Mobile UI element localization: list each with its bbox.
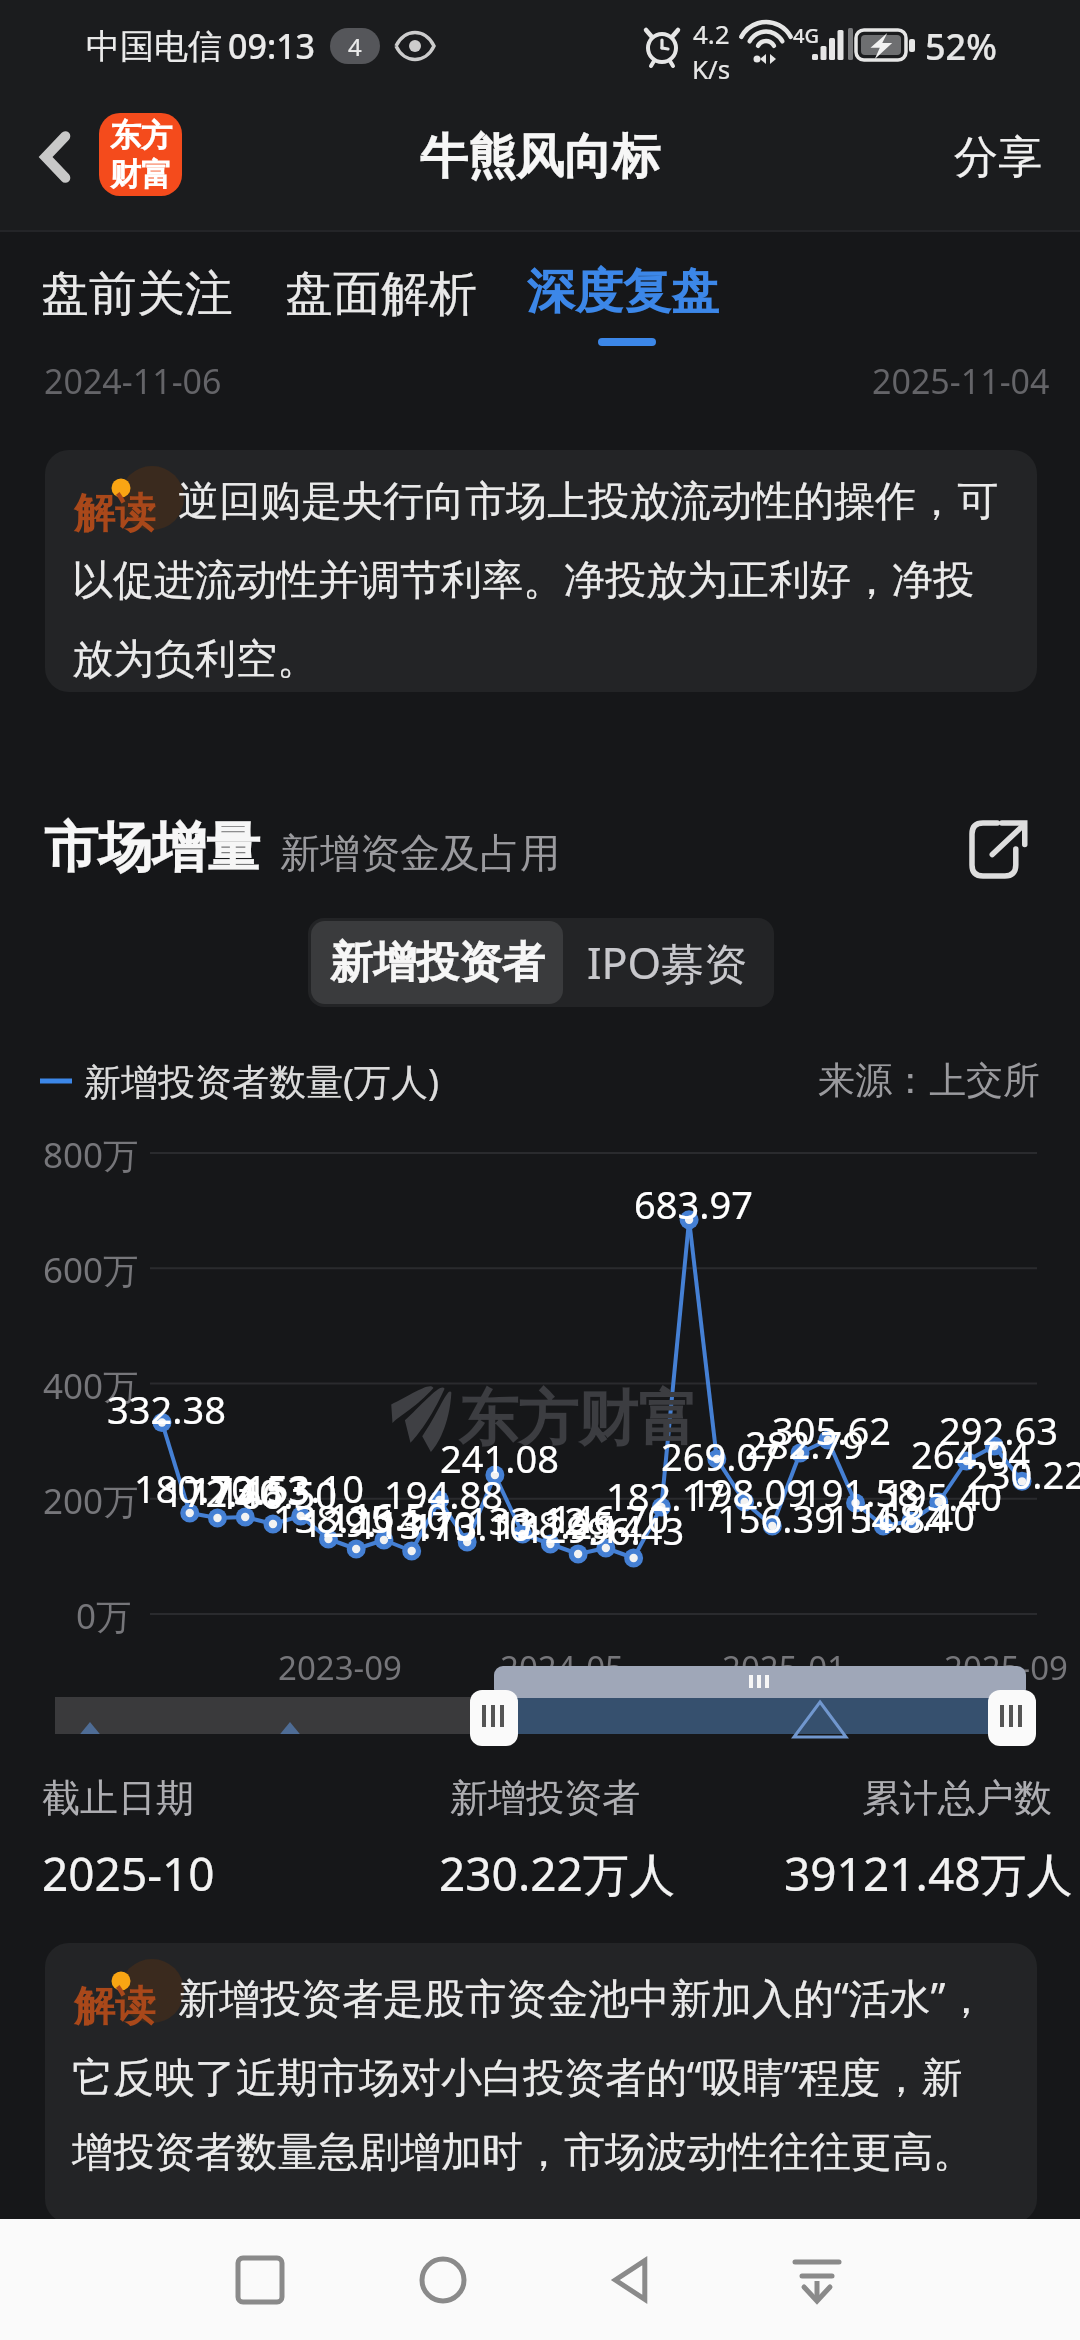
staticText: 683.97 (634, 1178, 753, 1230)
staticText: 新增投资者 (450, 1774, 640, 1822)
staticText: 分享 (954, 130, 1042, 185)
staticText: 129.14 (523, 1502, 642, 1554)
staticText: 东方财富 (458, 1381, 698, 1457)
button[interactable]: 分享 (954, 130, 1042, 185)
staticText: 195.40 (883, 1470, 1002, 1522)
staticText: 累计总户数 (862, 1774, 1052, 1822)
staticText: 解读 (74, 1981, 156, 2033)
staticText: 173.53 (190, 1464, 309, 1516)
staticText: 解读 (74, 488, 156, 540)
button[interactable]: Home (398, 2235, 488, 2325)
staticText: 156.39 (717, 1492, 836, 1544)
staticText: 292.63 (939, 1404, 1058, 1456)
staticText: 增投资者数量急剧增加时，市场波动性往往更高。 (72, 2127, 974, 2179)
staticText: 191.58 (800, 1466, 919, 1518)
staticText: 600万 (43, 1246, 139, 1294)
staticText: 中国电信 (86, 25, 222, 68)
staticText: 市场增量 (44, 814, 260, 882)
staticText: 305.62 (772, 1404, 891, 1456)
staticText: 0万 (76, 1592, 132, 1640)
staticText: 深度复盘 (527, 262, 719, 322)
staticText: 2025-09 (944, 1645, 1068, 1690)
staticText: 182.17 (606, 1470, 725, 1522)
staticText: 财富 (110, 155, 172, 194)
staticText: 153.10 (245, 1462, 364, 1514)
staticText: 它反映了近期市场对小白投资者的“吸睛”程度，新 (72, 2048, 963, 2104)
staticText: 146.70 (550, 1492, 669, 1544)
button[interactable]: IPO募资 (563, 921, 771, 1004)
button[interactable]: Hide navigation (772, 2235, 862, 2325)
staticText: 800万 (43, 1131, 139, 1179)
staticText: 133.12 (467, 1494, 586, 1546)
staticText: 172.40 (162, 1466, 281, 1518)
staticText: K/s (692, 51, 731, 86)
staticText: 39121.48万人 (784, 1842, 1073, 1905)
staticText: 盘面解析 (285, 264, 477, 324)
staticText: 138.25 (273, 1492, 392, 1544)
button[interactable]: Back (22, 122, 92, 192)
staticText: 200万 (43, 1477, 139, 1525)
staticText: 264.04 (911, 1428, 1030, 1480)
staticText: 241.08 (440, 1432, 559, 1484)
staticText: 2023-09 (278, 1645, 402, 1690)
staticText: 新增资金及占用 (280, 828, 560, 878)
staticText: 116.50 (329, 1490, 448, 1542)
staticText: 放为负利空。 (72, 634, 318, 686)
staticText: 以促进流动性并调节利率。净投放为正利好，净投 (72, 555, 974, 607)
staticText: 52% (925, 22, 997, 71)
staticText: 194.88 (384, 1468, 503, 1520)
staticText: 166.50 (218, 1468, 337, 1520)
staticText: 138.25 (495, 1498, 614, 1550)
staticText: 4G (793, 22, 819, 49)
staticText: 168.40 (856, 1490, 975, 1542)
button[interactable]: Open detail (964, 814, 1034, 884)
staticText: 129.14 (301, 1496, 420, 1548)
staticText: 4.2 (693, 16, 730, 51)
staticText: 2025-10 (42, 1842, 215, 1905)
staticText: 154.84 (828, 1492, 947, 1544)
staticText: 东方 (110, 116, 172, 155)
staticText: 269.07 (661, 1430, 780, 1482)
staticText: 盘前关注 (41, 264, 233, 324)
staticText: 2024-11-06 (44, 358, 222, 404)
button[interactable]: 深度复盘 (527, 262, 719, 322)
button[interactable]: Recents (215, 2235, 305, 2325)
staticText: 180.70 (134, 1462, 253, 1514)
staticText: IPO募资 (587, 933, 748, 992)
staticText: 4 (348, 30, 362, 63)
button[interactable]: 盘面解析 (285, 264, 477, 324)
staticText: 230.22万人 (439, 1842, 675, 1905)
staticText: 新增投资者 (330, 936, 545, 990)
button[interactable]: 新增投资者 (311, 921, 563, 1004)
staticText: 113.70 (356, 1498, 475, 1550)
staticText: 2025-01 (722, 1645, 846, 1690)
staticText: 来源：上交所 (818, 1057, 1040, 1104)
button[interactable]: East Money (99, 113, 182, 196)
staticText: 198.09 (689, 1466, 808, 1518)
staticText: 新增投资者数量(万人) (84, 1055, 440, 1106)
staticText: 截止日期 (42, 1774, 194, 1822)
staticText: 400万 (43, 1362, 139, 1410)
staticText: 牛熊风向标 (420, 127, 660, 187)
staticText: 09:13 (228, 23, 316, 69)
staticText: 2025-11-04 (872, 358, 1050, 404)
button[interactable]: 盘前关注 (41, 264, 233, 324)
staticText: 282.79 (745, 1418, 864, 1470)
staticText: 逆回购是央行向市场上投放流动性的操作，可 (178, 476, 998, 528)
staticText: 新增投资者是股市资金池中新加入的“活水”， (178, 1969, 987, 2025)
staticText: 230.22 (967, 1448, 1080, 1500)
staticText: 332.38 (107, 1383, 226, 1435)
button[interactable]: Back (586, 2235, 676, 2325)
staticText: 2024-05 (500, 1645, 624, 1690)
staticText: 113.10 (412, 1500, 531, 1552)
staticText: 96.43 (587, 1504, 685, 1556)
